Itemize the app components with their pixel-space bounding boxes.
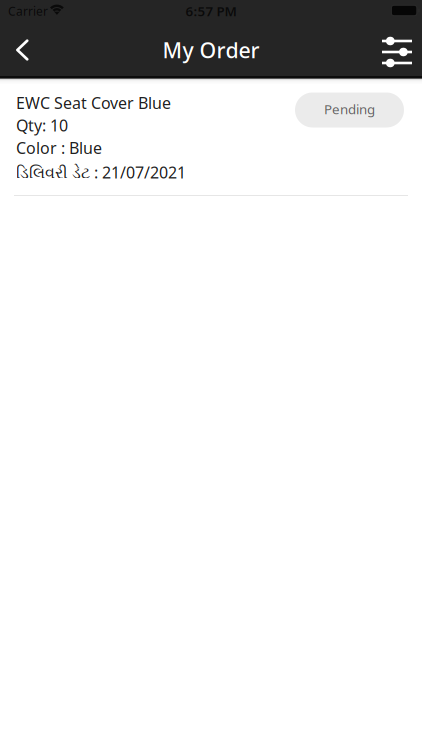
staticText: Color : Blue <box>16 137 102 158</box>
staticText: My Order <box>162 36 259 64</box>
staticText: EWC Seat Cover Blue <box>16 92 171 113</box>
staticText: ડિલિવરી ડેટ : 21/07/2021 <box>16 162 186 183</box>
button[interactable]: Filter <box>377 24 417 76</box>
button[interactable]: Back <box>2 24 42 76</box>
button[interactable]: Pending <box>295 92 404 127</box>
staticText: Qty: 10 <box>16 115 68 136</box>
staticText: Carrier <box>8 3 48 19</box>
staticText: 6:57 PM <box>185 2 236 20</box>
staticText: Pending <box>324 100 375 118</box>
